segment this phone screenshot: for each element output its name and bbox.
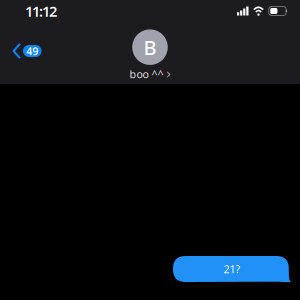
staticText: 11:12 bbox=[25, 1, 57, 21]
staticText: 21? bbox=[223, 262, 240, 276]
staticText: B bbox=[143, 34, 156, 60]
staticText: 49 bbox=[26, 44, 38, 58]
button[interactable]: boo, contact details bbox=[129, 25, 170, 81]
button[interactable]: Back, 49 unread messages bbox=[0, 37, 41, 65]
staticText: boo ^^ bbox=[129, 67, 163, 81]
